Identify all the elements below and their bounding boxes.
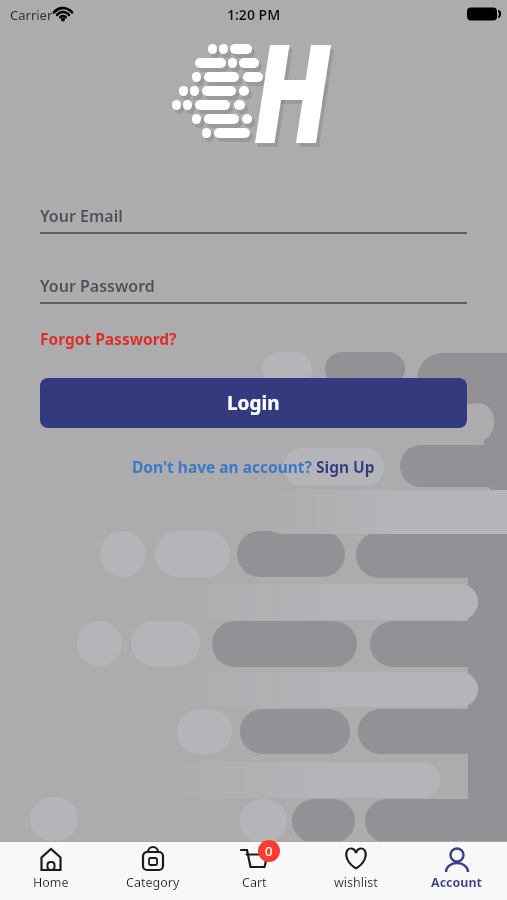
staticText: Forgot Password? bbox=[40, 328, 177, 349]
button[interactable]: Account bbox=[406, 842, 507, 900]
button[interactable]: wishlist bbox=[305, 842, 406, 900]
button[interactable]: Category bbox=[102, 842, 204, 900]
staticText: Account bbox=[431, 874, 483, 891]
staticText: Sign Up bbox=[316, 456, 375, 477]
staticText: Your Password bbox=[40, 275, 155, 297]
staticText: wishlist bbox=[334, 874, 378, 891]
staticText: Category bbox=[126, 874, 180, 891]
staticText: Home bbox=[33, 874, 69, 891]
button[interactable]: Your Email bbox=[40, 200, 467, 234]
button[interactable]: Don't have an account? bbox=[132, 456, 375, 477]
button[interactable]: Your Password bbox=[40, 270, 467, 304]
staticText: Cart bbox=[242, 874, 267, 891]
staticText: Don't have an account? bbox=[132, 456, 316, 477]
button[interactable]: Login bbox=[40, 378, 467, 428]
button[interactable]: Forgot Password? bbox=[40, 328, 177, 349]
button[interactable]: 0 bbox=[204, 842, 305, 900]
staticText: 0 bbox=[265, 842, 273, 860]
staticText: Carrier bbox=[10, 6, 53, 24]
button[interactable]: Home bbox=[0, 842, 102, 900]
staticText: 1:20 PM bbox=[227, 5, 281, 24]
staticText: Your Email bbox=[40, 205, 123, 227]
staticText: Login bbox=[227, 390, 280, 416]
